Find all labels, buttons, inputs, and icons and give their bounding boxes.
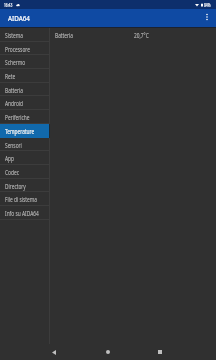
button[interactable]: Directory xyxy=(0,179,49,192)
button[interactable]: Codec xyxy=(0,165,49,179)
button[interactable]: Recent apps xyxy=(148,344,172,360)
staticText: Codec xyxy=(5,168,19,176)
button[interactable]: More options xyxy=(198,9,216,27)
staticText: Sistema xyxy=(5,31,23,39)
staticText: Rete xyxy=(5,72,16,80)
button[interactable]: Temperature xyxy=(0,124,49,138)
staticText: Schermo xyxy=(5,58,25,66)
staticText: Periferiche xyxy=(5,113,30,121)
staticText: App xyxy=(5,154,14,162)
staticText: Sensori xyxy=(5,141,22,149)
button[interactable]: Processore xyxy=(0,42,49,55)
button[interactable]: Sensori xyxy=(0,138,49,151)
button[interactable]: Back xyxy=(42,344,66,360)
staticText: AIDA64 xyxy=(8,13,30,24)
button[interactable]: Batteria xyxy=(0,83,49,96)
button[interactable]: Info su AIDA64 xyxy=(0,206,49,220)
button[interactable]: Sistema xyxy=(0,28,49,42)
staticText: Android xyxy=(5,99,24,107)
button[interactable]: Rete xyxy=(0,69,49,83)
staticText: Processore xyxy=(5,45,30,53)
button[interactable]: Home xyxy=(96,344,120,360)
button[interactable]: Periferiche xyxy=(0,110,49,124)
button[interactable]: Android xyxy=(0,96,49,110)
button[interactable]: App xyxy=(0,151,49,165)
staticText: 20,7°C xyxy=(134,31,149,39)
button[interactable]: Batteria xyxy=(50,28,216,42)
button[interactable]: Schermo xyxy=(0,55,49,69)
staticText: Directory xyxy=(5,182,26,190)
staticText: File di sistema xyxy=(5,195,38,203)
staticText: 84% xyxy=(204,2,211,8)
button[interactable]: File di sistema xyxy=(0,192,49,206)
staticText: Temperature xyxy=(5,127,35,135)
staticText: Info su AIDA64 xyxy=(5,209,39,217)
staticText: Batteria xyxy=(5,86,24,94)
staticText: 16:43 xyxy=(4,2,13,8)
staticText: Batteria xyxy=(55,31,74,39)
